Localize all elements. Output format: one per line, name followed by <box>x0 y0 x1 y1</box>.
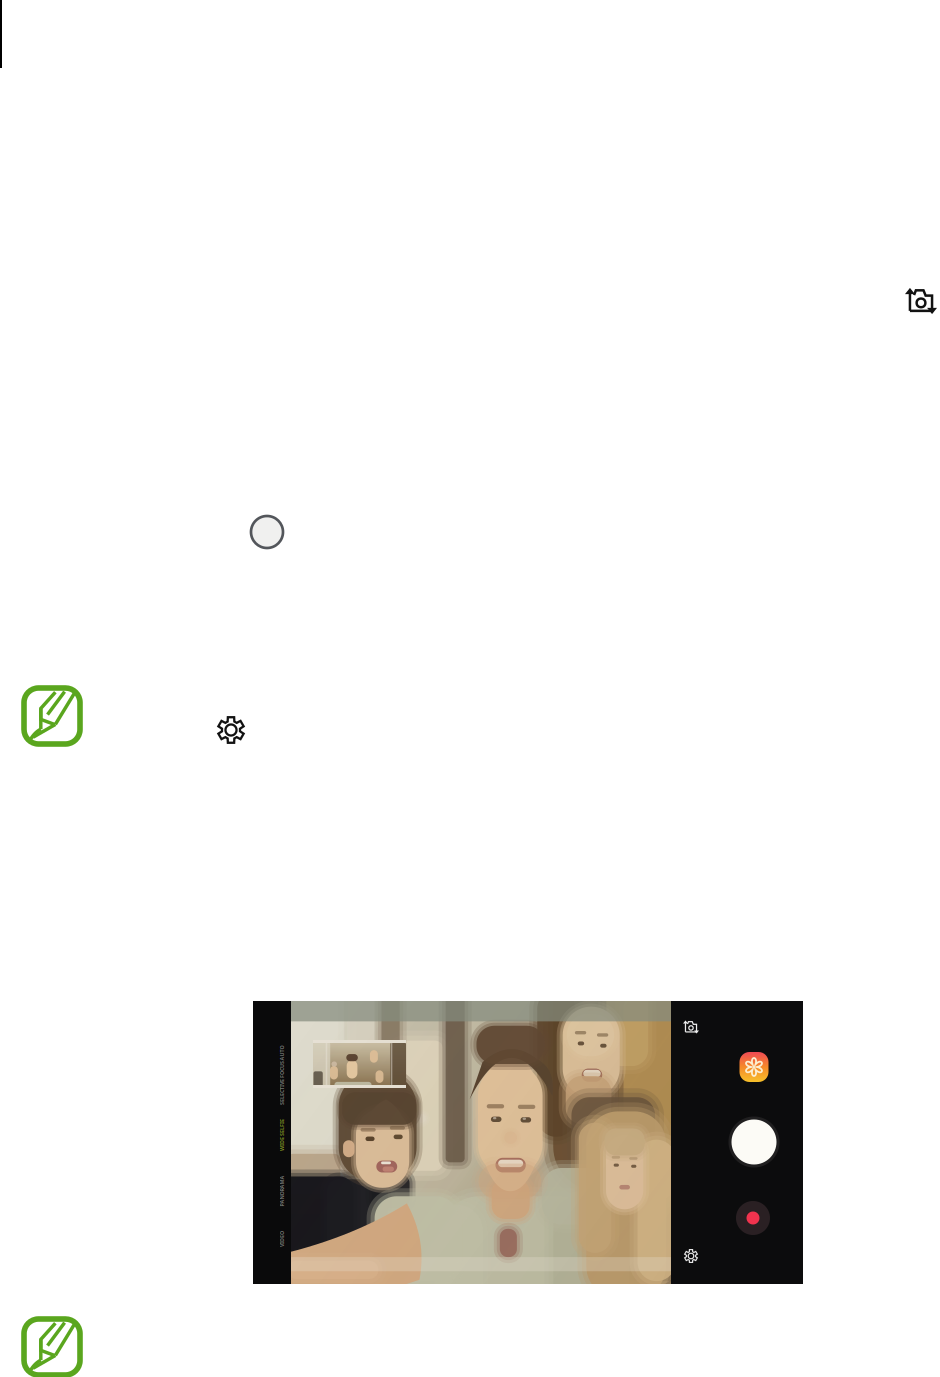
button[interactable]: Shutter <box>251 516 283 548</box>
button[interactable]: Camera settings <box>684 1249 698 1263</box>
button[interactable]: Record video <box>736 1201 770 1235</box>
button[interactable]: Switch camera <box>683 1020 699 1034</box>
button[interactable]: Effects <box>739 1052 768 1082</box>
button[interactable]: Settings <box>217 716 245 744</box>
button[interactable]: Switch camera <box>904 287 937 314</box>
staticText: SELECTIVE FOCUS <box>260 1079 304 1087</box>
staticText: PANORAMA <box>266 1187 297 1195</box>
staticText: WIDE SELFIE <box>266 1131 298 1139</box>
staticText: AUTO <box>274 1049 289 1057</box>
staticText: VIDEO <box>274 1235 290 1243</box>
button[interactable]: Take picture <box>728 1116 779 1167</box>
